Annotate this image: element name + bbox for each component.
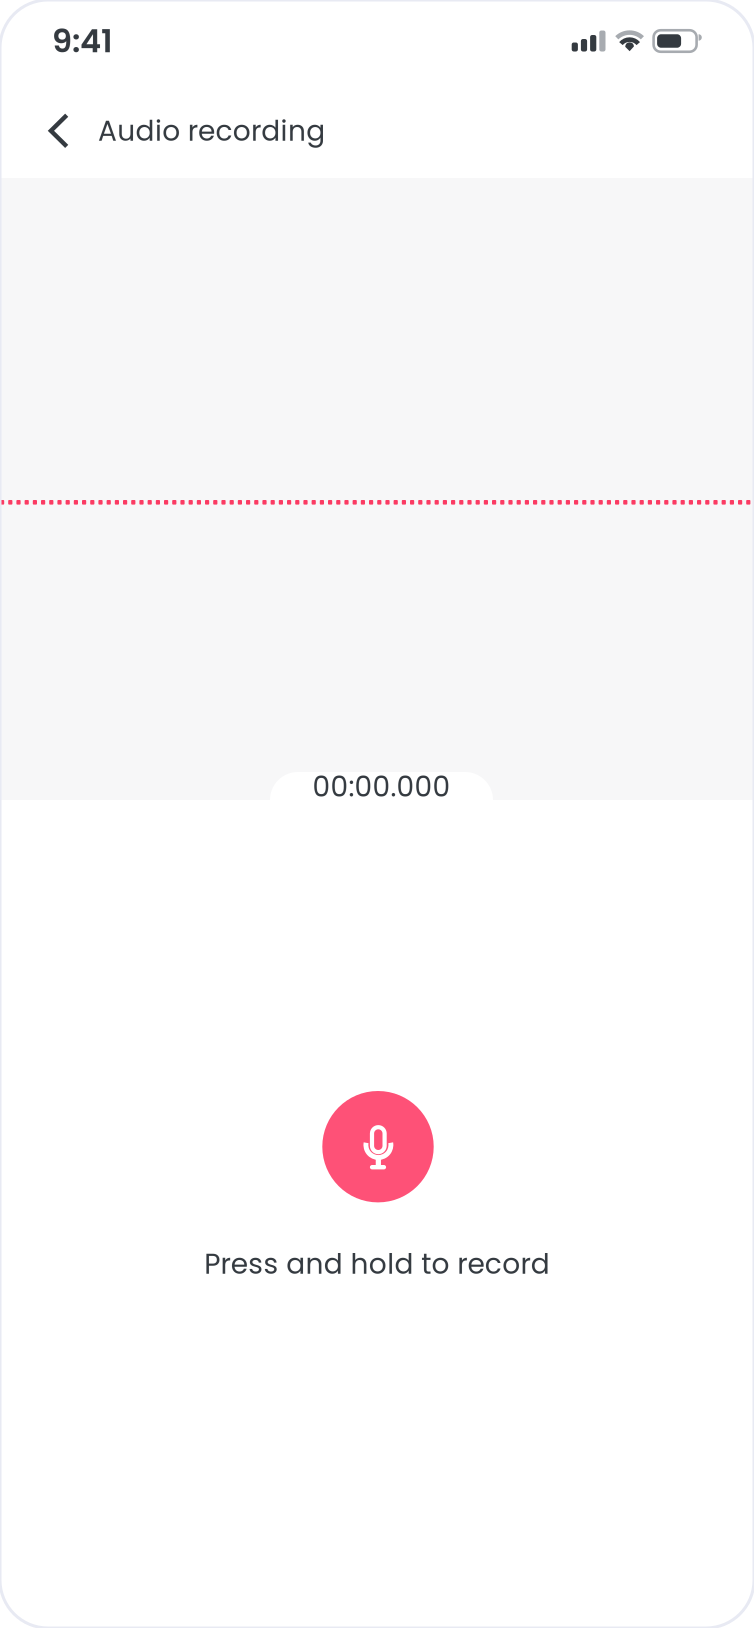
staticText: 00:00.000 bbox=[312, 767, 450, 806]
staticText: Audio recording bbox=[98, 111, 325, 151]
staticText: 9:41 bbox=[52, 19, 113, 63]
button[interactable]: Back bbox=[31, 95, 87, 167]
staticText: Press and hold to record bbox=[204, 1244, 550, 1284]
button[interactable]: Record bbox=[320, 1091, 434, 1202]
